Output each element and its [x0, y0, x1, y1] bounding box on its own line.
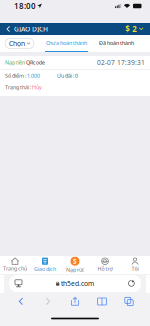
staticText: QRcode	[26, 59, 45, 66]
button[interactable]: Forward	[40, 293, 56, 309]
staticText: Hỗ trợ	[97, 265, 112, 272]
button[interactable]: Page settings	[11, 276, 26, 291]
staticText: Trạng thái :	[5, 84, 32, 91]
staticText: Đã hoàn thành	[99, 39, 134, 47]
staticText: Trang chủ	[3, 265, 27, 272]
button[interactable]: $ 2	[119, 23, 150, 35]
staticText: Chọn	[9, 39, 25, 48]
staticText: th5ed.com	[61, 279, 94, 288]
staticText: Nạp tiền	[5, 59, 26, 66]
button[interactable]: Back	[13, 293, 29, 309]
button[interactable]: Hỗ trợ	[90, 256, 120, 274]
staticText: Ưu đãi : 0	[57, 72, 78, 79]
button[interactable]: Reload	[124, 276, 139, 291]
staticText: Số điểm :	[5, 72, 27, 79]
button[interactable]: Tabs	[121, 293, 137, 309]
button[interactable]: Tôi	[120, 256, 150, 274]
button[interactable]: Giao dịch	[30, 256, 60, 274]
button[interactable]: S	[60, 256, 90, 274]
button[interactable]: Chọn	[5, 38, 34, 48]
staticText: 02-07 17:39:31	[97, 58, 145, 67]
button[interactable]: Back to GIAO DỊCH	[0, 23, 54, 35]
button[interactable]: Đã hoàn thành	[99, 35, 134, 52]
staticText: Chưa hoàn thành	[46, 39, 87, 47]
staticText: S	[73, 257, 77, 266]
button[interactable]: Trang chủ	[0, 256, 30, 274]
staticText: 18:00	[14, 1, 36, 11]
staticText: Tôi	[131, 265, 138, 272]
button[interactable]: Bookmarks	[94, 293, 110, 309]
staticText: $ 2	[125, 24, 137, 34]
button[interactable]: Nạp tiền	[0, 56, 150, 96]
staticText: GIAO DỊCH	[14, 25, 48, 33]
staticText: Hủy	[32, 84, 42, 91]
staticText: 1.000	[27, 72, 40, 79]
staticText: Nạp rút	[66, 266, 84, 273]
button[interactable]: Chưa hoàn thành	[45, 35, 88, 52]
staticText: Giao dịch	[34, 265, 56, 272]
button[interactable]: Share	[67, 293, 83, 309]
